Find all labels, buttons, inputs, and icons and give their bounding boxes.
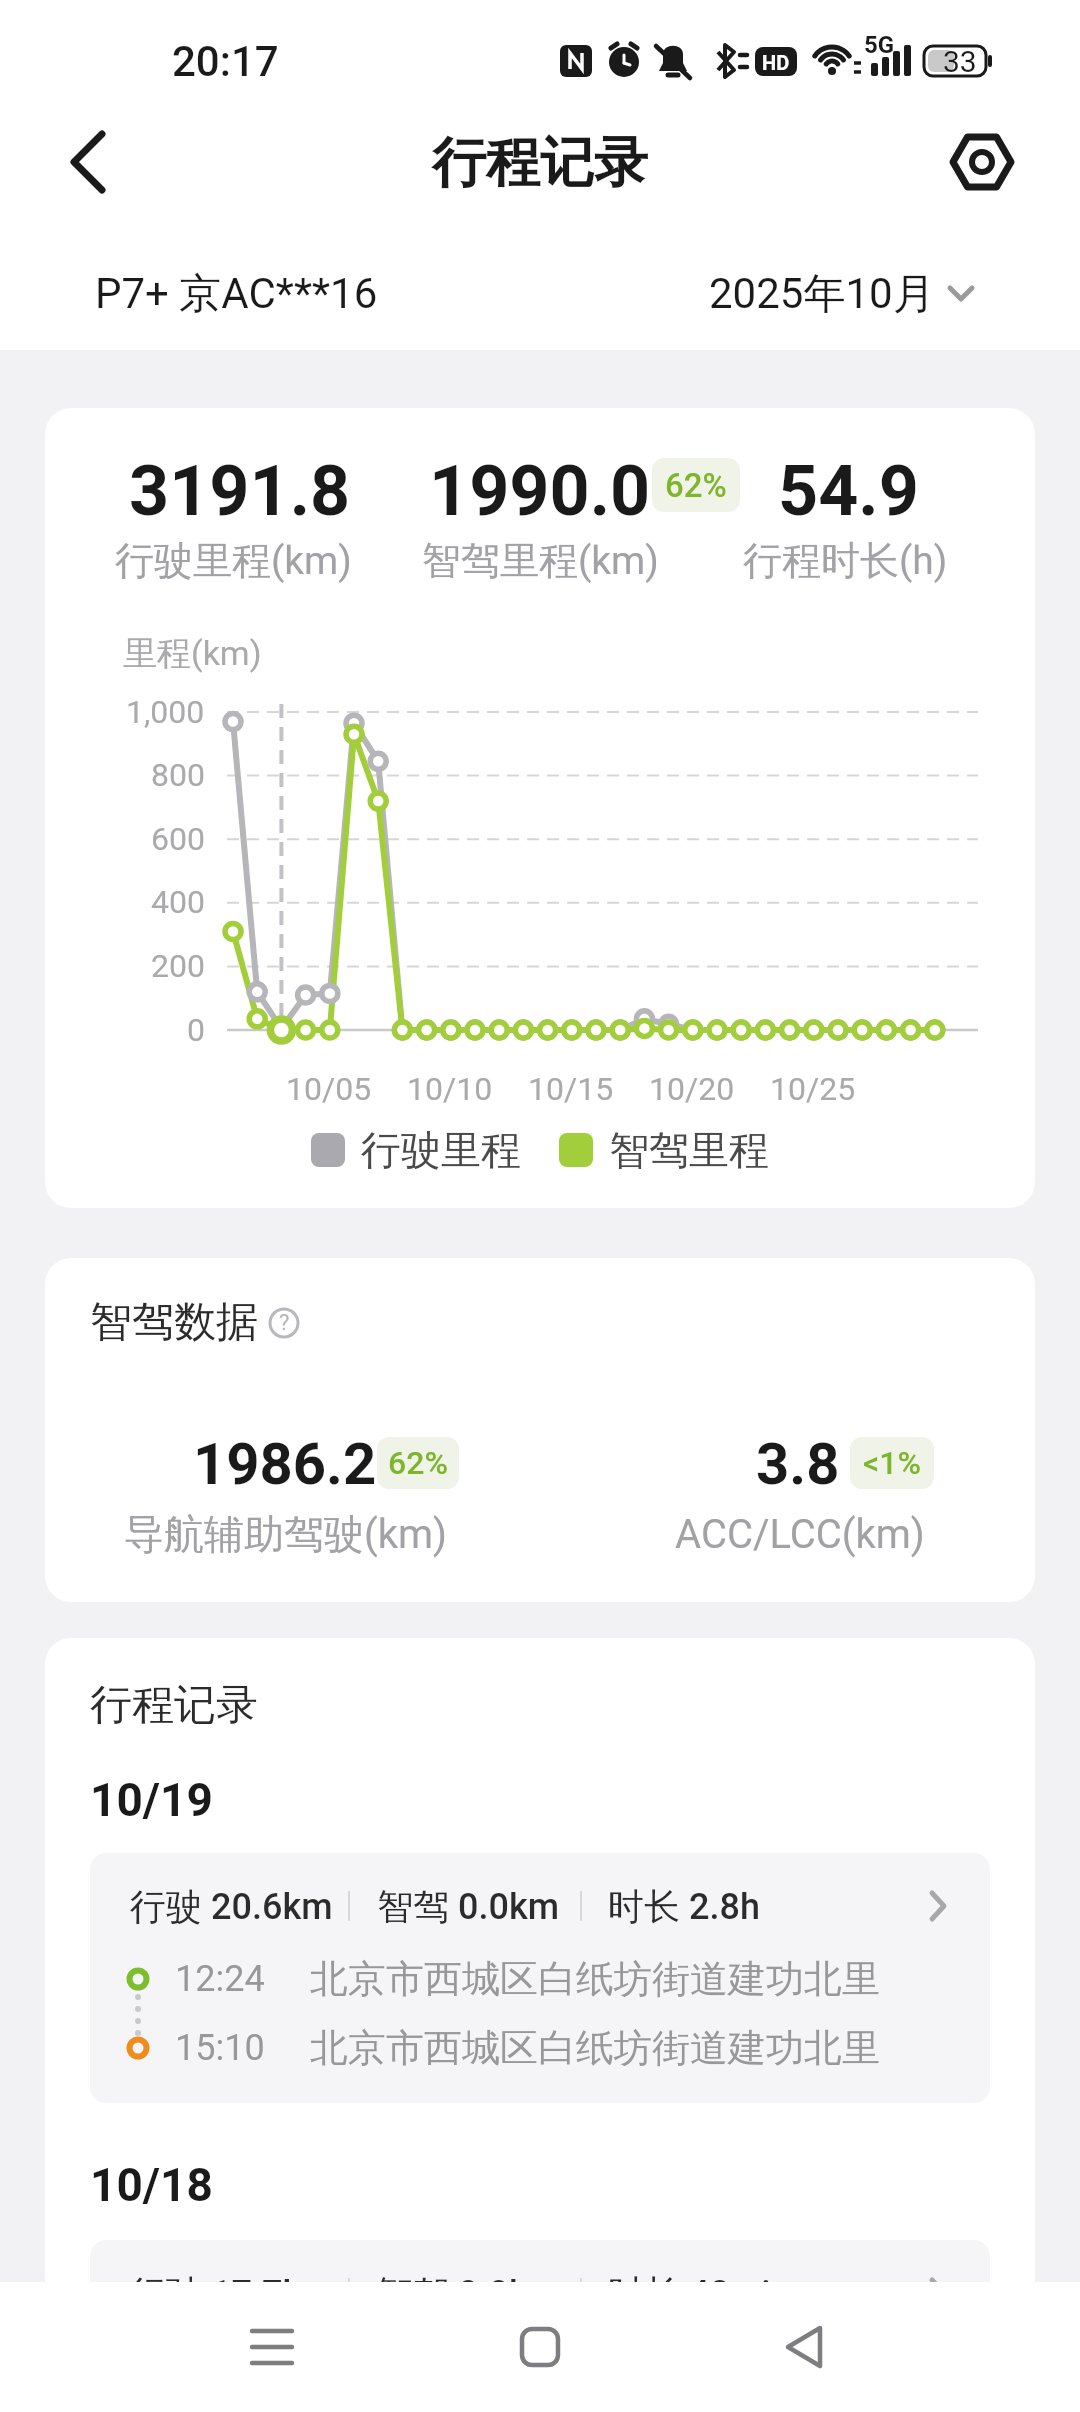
staticText: 3191.8 <box>129 450 351 520</box>
button[interactable]: 行驶 17.7km <box>90 2240 990 2412</box>
staticText: 600 <box>151 820 205 858</box>
staticText: 54.9 <box>778 450 919 520</box>
staticText: 800 <box>151 756 205 794</box>
staticText: 10/05 <box>286 1070 372 1108</box>
staticText: 10/10 <box>407 1070 493 1108</box>
staticText: 北京市西城区白纸坊街道建功北里 <box>310 2024 880 2072</box>
staticText: 2025年10月 <box>709 268 935 318</box>
button[interactable] <box>942 122 1022 202</box>
staticText: 200 <box>151 947 205 985</box>
staticText: 3.8 <box>756 1430 840 1496</box>
button[interactable] <box>50 122 130 202</box>
button[interactable] <box>212 2284 332 2410</box>
staticText: 行程记录 <box>432 129 648 197</box>
staticText: 15:10 <box>175 2027 265 2069</box>
staticText: 12:24 <box>175 1958 265 2000</box>
staticText: P7+ 京AC***16 <box>95 268 378 318</box>
staticText: 智驾里程 <box>609 1125 769 1175</box>
staticText: 10/20 <box>649 1070 735 1108</box>
button[interactable]: 行驶 20.6km <box>90 1853 990 2103</box>
staticText: 智驾里程(km) <box>422 536 659 585</box>
staticText: 1986.2 <box>193 1430 377 1496</box>
staticText: 10/15 <box>528 1070 614 1108</box>
staticText: 时长 48min <box>608 2271 791 2316</box>
staticText: 62% <box>665 466 727 505</box>
staticText: 10/18 <box>90 2158 213 2212</box>
staticText: 智驾 0.0km <box>377 1884 560 1929</box>
staticText: 导航辅助驾驶(km) <box>124 1509 447 1559</box>
staticText: 智驾数据 <box>90 1296 258 1349</box>
staticText: 北京市西城区白纸坊街道建功北里 <box>310 1955 880 2003</box>
staticText: 10/19 <box>90 1773 213 1827</box>
staticText: 0 <box>187 1011 205 1049</box>
staticText: ? <box>279 1310 290 1336</box>
staticText: 10/25 <box>770 1070 856 1108</box>
staticText: HD <box>762 51 790 74</box>
staticText: 行驶里程 <box>361 1125 521 1175</box>
staticText: 33 <box>943 44 977 79</box>
staticText: 5G <box>864 31 895 59</box>
staticText: 1,000 <box>126 693 205 731</box>
staticText: 1990.0 <box>429 450 651 520</box>
button[interactable] <box>746 2284 866 2410</box>
staticText: 时长 2.8h <box>608 1884 760 1929</box>
staticText: ACC/LCC(km) <box>675 1511 925 1558</box>
staticText: 行程记录 <box>90 1679 258 1732</box>
staticText: 行驶 17.7km <box>130 2271 333 2316</box>
staticText: 里程(km) <box>123 632 262 675</box>
staticText: 400 <box>151 883 205 921</box>
staticText: 20:17 <box>172 37 279 86</box>
staticText: 行驶 20.6km <box>130 1884 333 1929</box>
staticText: 智驾 0.0km <box>377 2271 560 2316</box>
staticText: 行驶里程(km) <box>115 536 352 585</box>
button[interactable] <box>480 2284 600 2410</box>
staticText: <1% <box>863 1444 921 1482</box>
staticText: 行程时长(h) <box>743 536 948 585</box>
staticText: 62% <box>388 1444 448 1482</box>
button[interactable]: 2025年10月 <box>700 258 990 328</box>
